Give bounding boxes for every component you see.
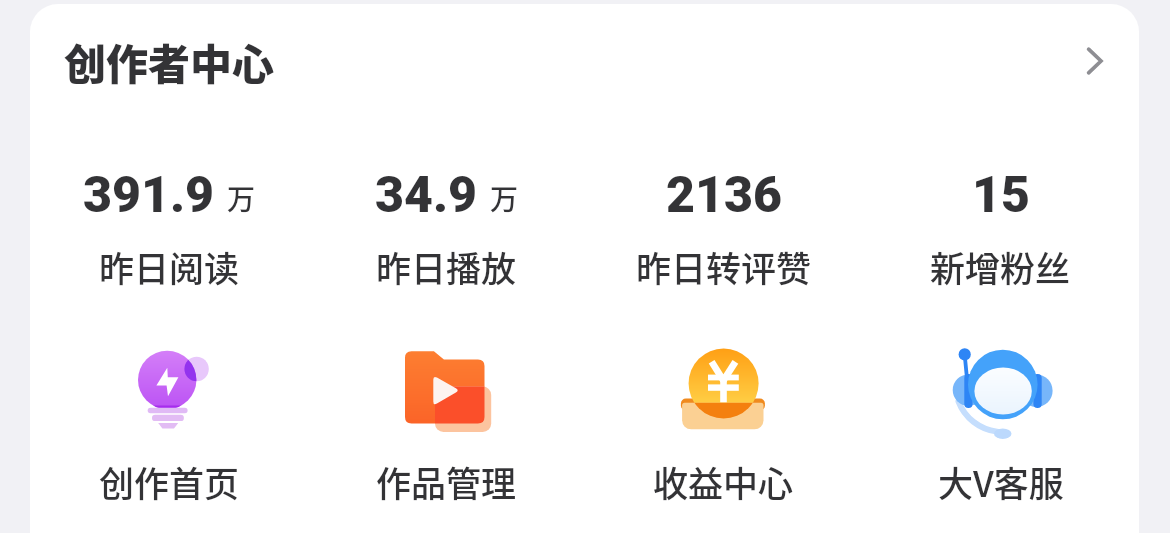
button[interactable]: 391.9 xyxy=(30,166,308,292)
staticText: 大V客服 xyxy=(938,456,1064,507)
staticText: 34.9 xyxy=(375,166,478,225)
button[interactable]: 34.9 xyxy=(308,166,585,292)
staticText: 新增粉丝 xyxy=(930,241,1071,292)
button[interactable]: 大V客服 xyxy=(862,340,1139,507)
staticText: 昨日播放 xyxy=(376,241,517,292)
staticText: 15 xyxy=(972,166,1030,225)
button[interactable]: 收益中心 xyxy=(585,340,862,507)
staticText: 创作首页 xyxy=(99,456,240,507)
button[interactable]: 创作者中心 xyxy=(30,4,1139,118)
staticText: 万 xyxy=(227,178,256,219)
staticText: 昨日阅读 xyxy=(99,241,240,292)
staticText: 作品管理 xyxy=(376,456,517,507)
staticText: 收益中心 xyxy=(653,456,794,507)
button[interactable]: 2136 xyxy=(585,166,862,292)
staticText: 昨日转评赞 xyxy=(636,241,812,292)
button[interactable]: 15 xyxy=(862,166,1139,292)
button[interactable]: 创作首页 xyxy=(30,340,308,507)
button[interactable]: 作品管理 xyxy=(308,340,585,507)
other: 进入创作者中心 xyxy=(1072,41,1112,81)
staticText: 万 xyxy=(490,178,519,219)
staticText: 391.9 xyxy=(83,166,215,225)
staticText: 创作者中心 xyxy=(64,31,275,92)
staticText: 2136 xyxy=(666,166,782,225)
